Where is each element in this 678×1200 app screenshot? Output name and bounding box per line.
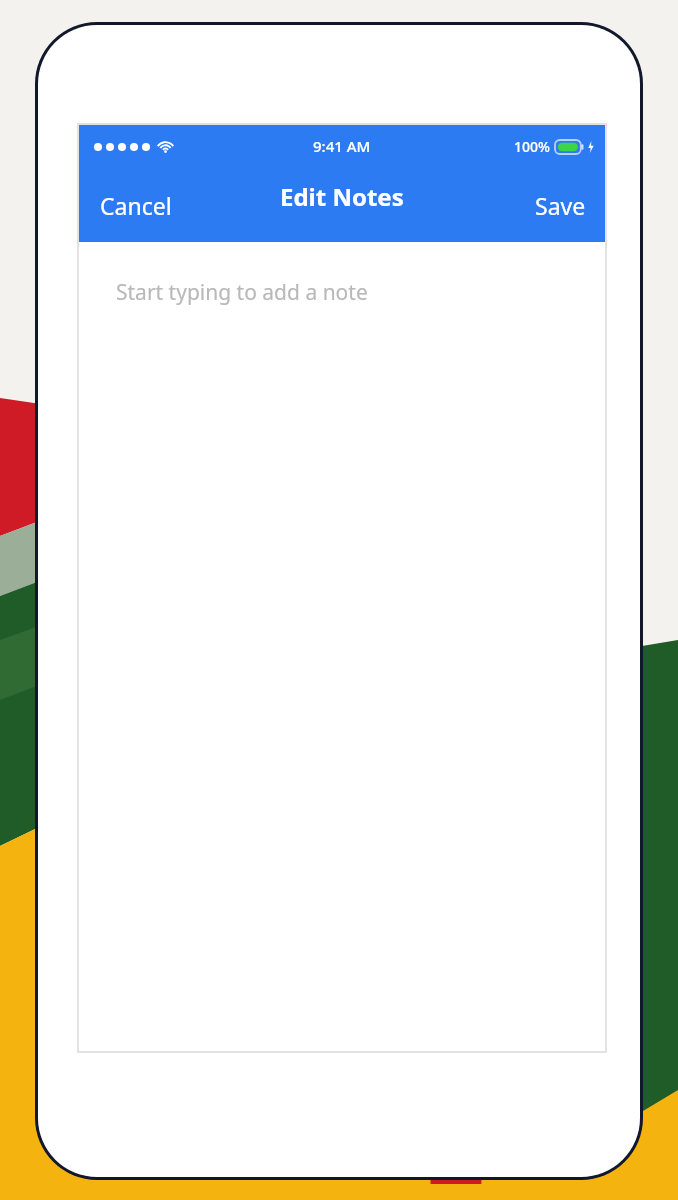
staticText: Save: [535, 190, 586, 221]
staticText: Edit Notes: [280, 180, 404, 213]
staticText: Cancel: [100, 190, 172, 221]
staticText: 100%: [514, 137, 550, 156]
button[interactable]: Start typing to add a note: [78, 242, 606, 1052]
staticText: Start typing to add a note: [116, 278, 368, 307]
button[interactable]: Cancel: [78, 178, 194, 233]
button[interactable]: Save: [515, 178, 606, 233]
staticText: 9:41 AM: [313, 136, 371, 156]
